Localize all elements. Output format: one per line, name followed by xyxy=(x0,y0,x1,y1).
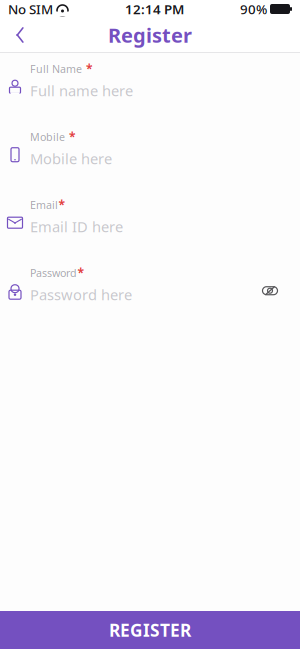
button[interactable]: Mobile xyxy=(0,121,300,189)
staticText: * xyxy=(86,61,93,77)
button[interactable]: Password xyxy=(0,257,300,325)
staticText: * xyxy=(58,197,65,213)
button[interactable]: REGISTER xyxy=(0,611,300,649)
staticText: Password xyxy=(30,266,77,280)
staticText: REGISTER xyxy=(109,618,191,641)
staticText: Email xyxy=(30,198,58,212)
staticText: No SIM xyxy=(8,0,53,18)
button[interactable]: Full Name xyxy=(0,53,300,121)
button[interactable]: Back xyxy=(0,18,40,52)
staticText: Register xyxy=(108,22,192,48)
staticText: Password here xyxy=(30,285,132,304)
staticText: * xyxy=(77,265,84,281)
staticText: Email ID here xyxy=(30,217,123,236)
staticText: 12:14 PM xyxy=(125,0,184,18)
button[interactable]: Email xyxy=(0,189,300,257)
staticText: Mobile xyxy=(30,130,65,144)
staticText: Mobile here xyxy=(30,149,112,168)
staticText: Full name here xyxy=(30,81,133,100)
button[interactable]: Show password xyxy=(257,280,283,302)
staticText: 90% xyxy=(240,0,267,18)
staticText: * xyxy=(69,129,76,145)
staticText: Full Name xyxy=(30,62,82,76)
